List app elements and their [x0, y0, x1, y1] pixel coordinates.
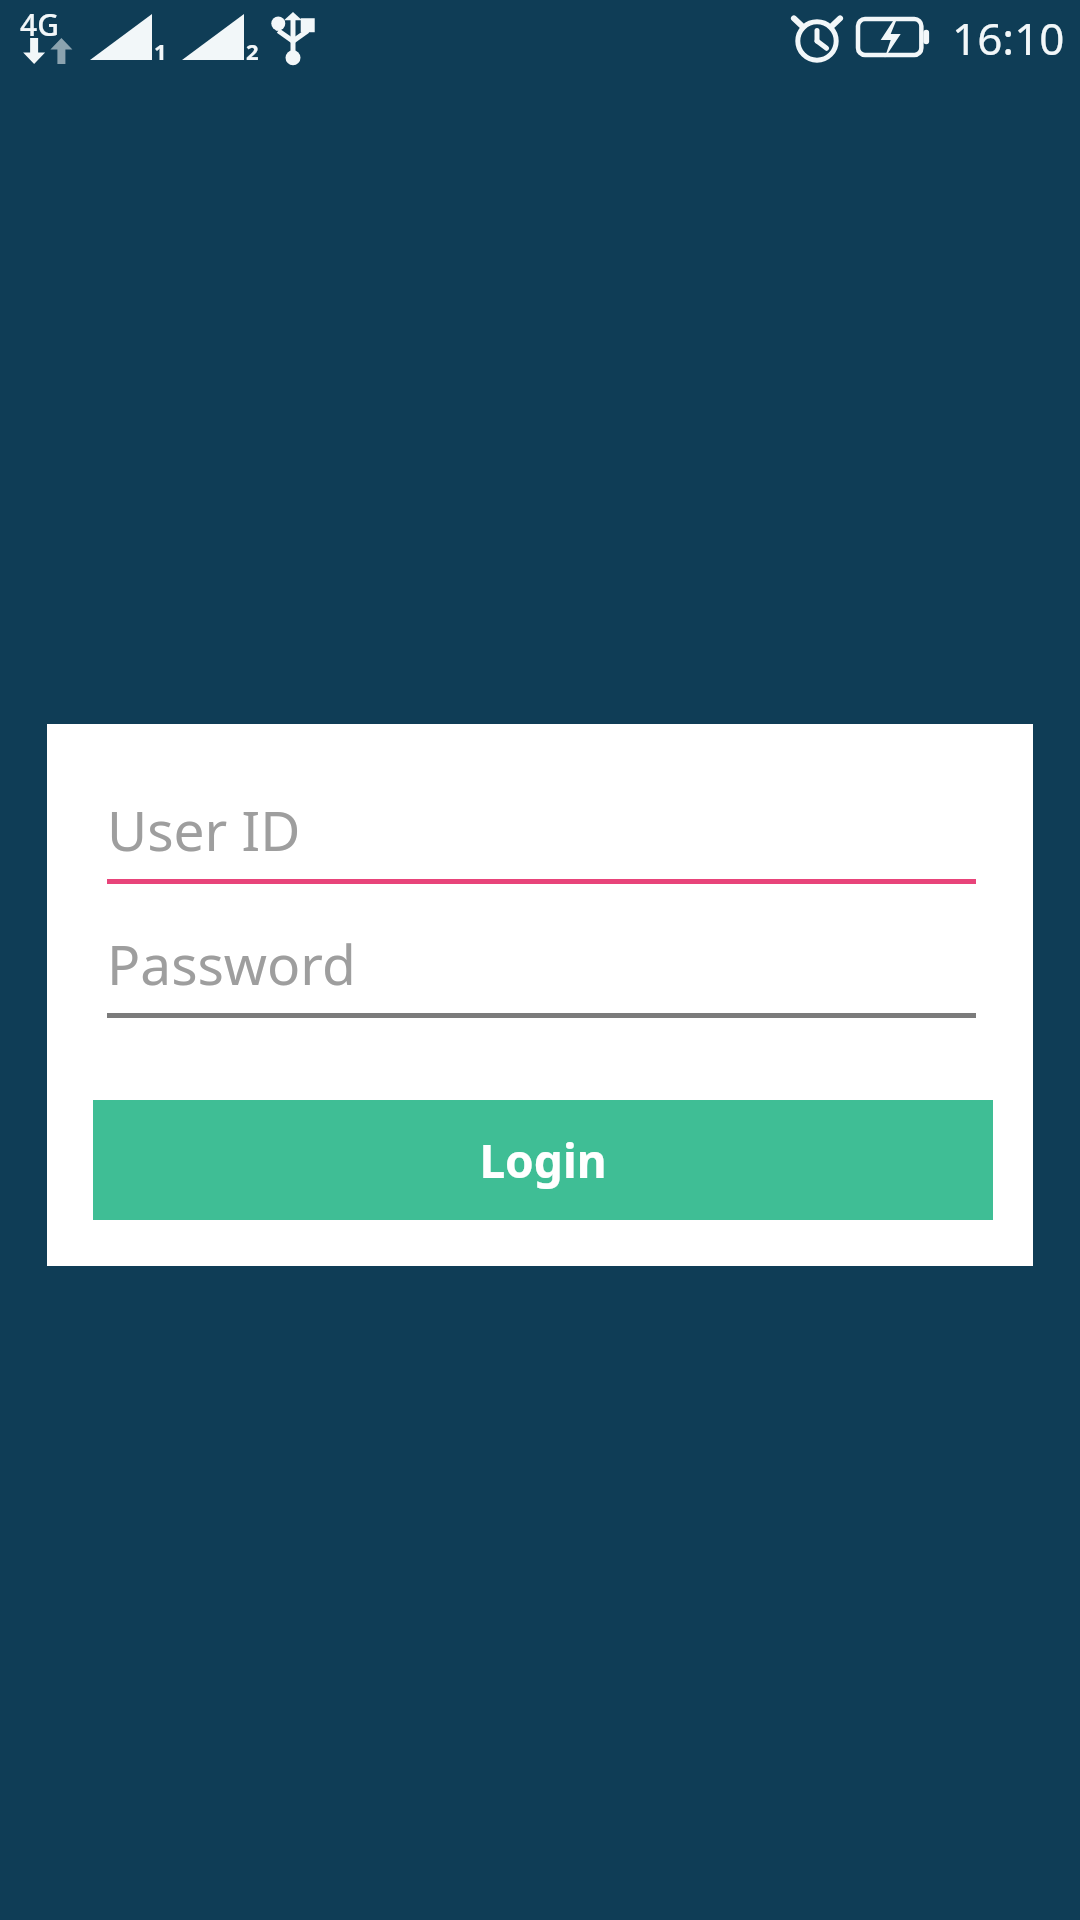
button[interactable]: Password — [107, 914, 976, 1018]
other: Alarm set — [793, 12, 841, 62]
staticText: 4G — [20, 4, 59, 45]
staticText: 2 — [246, 36, 259, 66]
staticText: Login — [479, 1129, 607, 1192]
button[interactable]: Login — [93, 1100, 993, 1220]
other: Battery charging — [858, 19, 930, 55]
button[interactable]: User ID — [107, 780, 976, 884]
staticText: 16:10 — [952, 8, 1065, 68]
staticText: 1 — [154, 36, 167, 66]
staticText: User ID — [107, 792, 301, 867]
other: USB connected — [270, 12, 316, 64]
staticText: Password — [107, 926, 356, 1001]
